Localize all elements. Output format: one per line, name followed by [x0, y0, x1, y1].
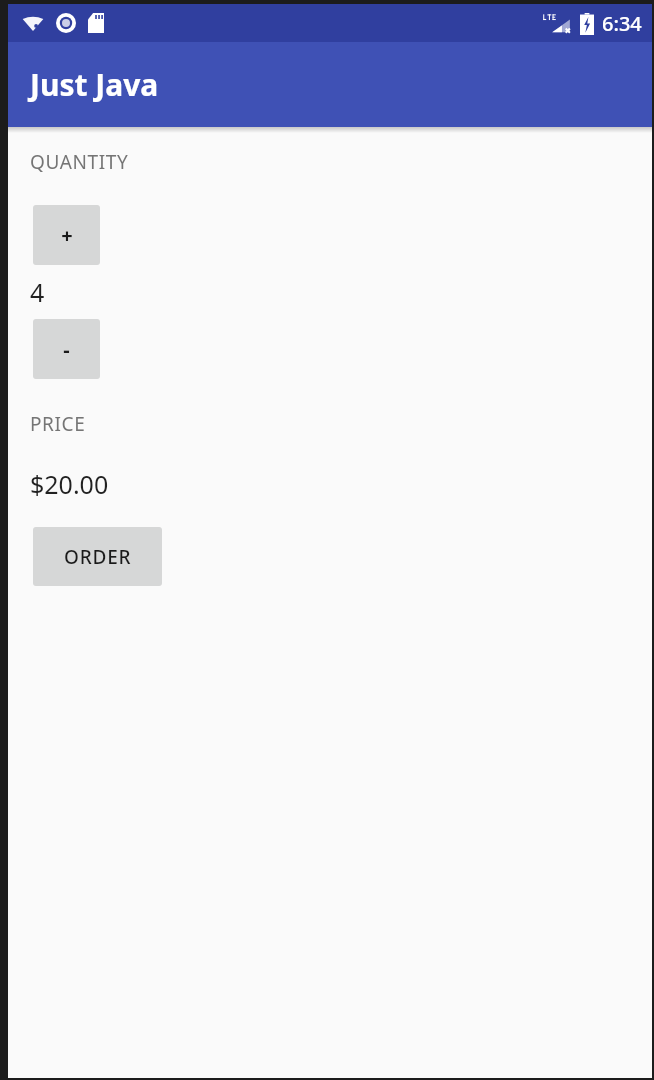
- staticText: ORDER: [64, 544, 132, 570]
- button[interactable]: Decrement quantity: [33, 319, 100, 379]
- staticText: PRICE: [30, 411, 86, 437]
- staticText: QUANTITY: [30, 149, 129, 175]
- button[interactable]: ORDER: [33, 527, 162, 586]
- staticText: 6:34: [602, 10, 642, 37]
- staticText: 4: [30, 275, 45, 309]
- staticText: -: [63, 336, 70, 363]
- staticText: Just Java: [30, 64, 159, 105]
- staticText: $20.00: [30, 467, 109, 501]
- staticText: +: [61, 222, 73, 249]
- button[interactable]: Increment quantity: [33, 205, 100, 265]
